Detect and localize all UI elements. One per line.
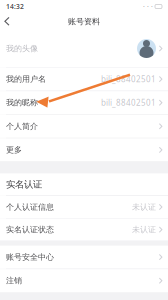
staticText: 实名认证状态 [6,225,54,234]
staticText: bili_88402501 [101,97,156,108]
button[interactable]: 我的头像 [0,30,168,67]
staticText: · · · [143,2,155,11]
button[interactable]: 注销 [0,269,168,292]
staticText: 未认证 [132,202,156,212]
staticText: 注销 [6,276,22,286]
staticText: 我的用户名 [6,74,46,84]
button[interactable]: 我的昵称 [0,91,168,114]
button[interactable]: 个人认证信息 [0,196,168,218]
button[interactable]: 账号安全中心 [0,246,168,269]
staticText: 实名认证 [6,179,42,190]
button[interactable]: 实名认证 [0,173,168,195]
staticText: 我的头像 [6,44,38,53]
staticText: 更多 [6,145,22,155]
staticText: bili_88402501 [101,74,156,84]
staticText: 14:32 [6,2,24,11]
button[interactable]: 实名认证状态 [0,219,168,241]
button[interactable]: 返回 [0,13,16,30]
staticText: 我的昵称 [6,98,38,108]
staticText: 账号安全中心 [6,252,54,262]
button[interactable]: 更多 [0,138,168,161]
staticText: 账号资料 [68,17,100,26]
button[interactable]: 我的用户名 [0,68,168,91]
staticText: 个人认证信息 [6,202,54,212]
staticText: 个人简介 [6,121,38,131]
staticText: 未认证 [132,225,156,234]
button[interactable]: 个人简介 [0,115,168,138]
